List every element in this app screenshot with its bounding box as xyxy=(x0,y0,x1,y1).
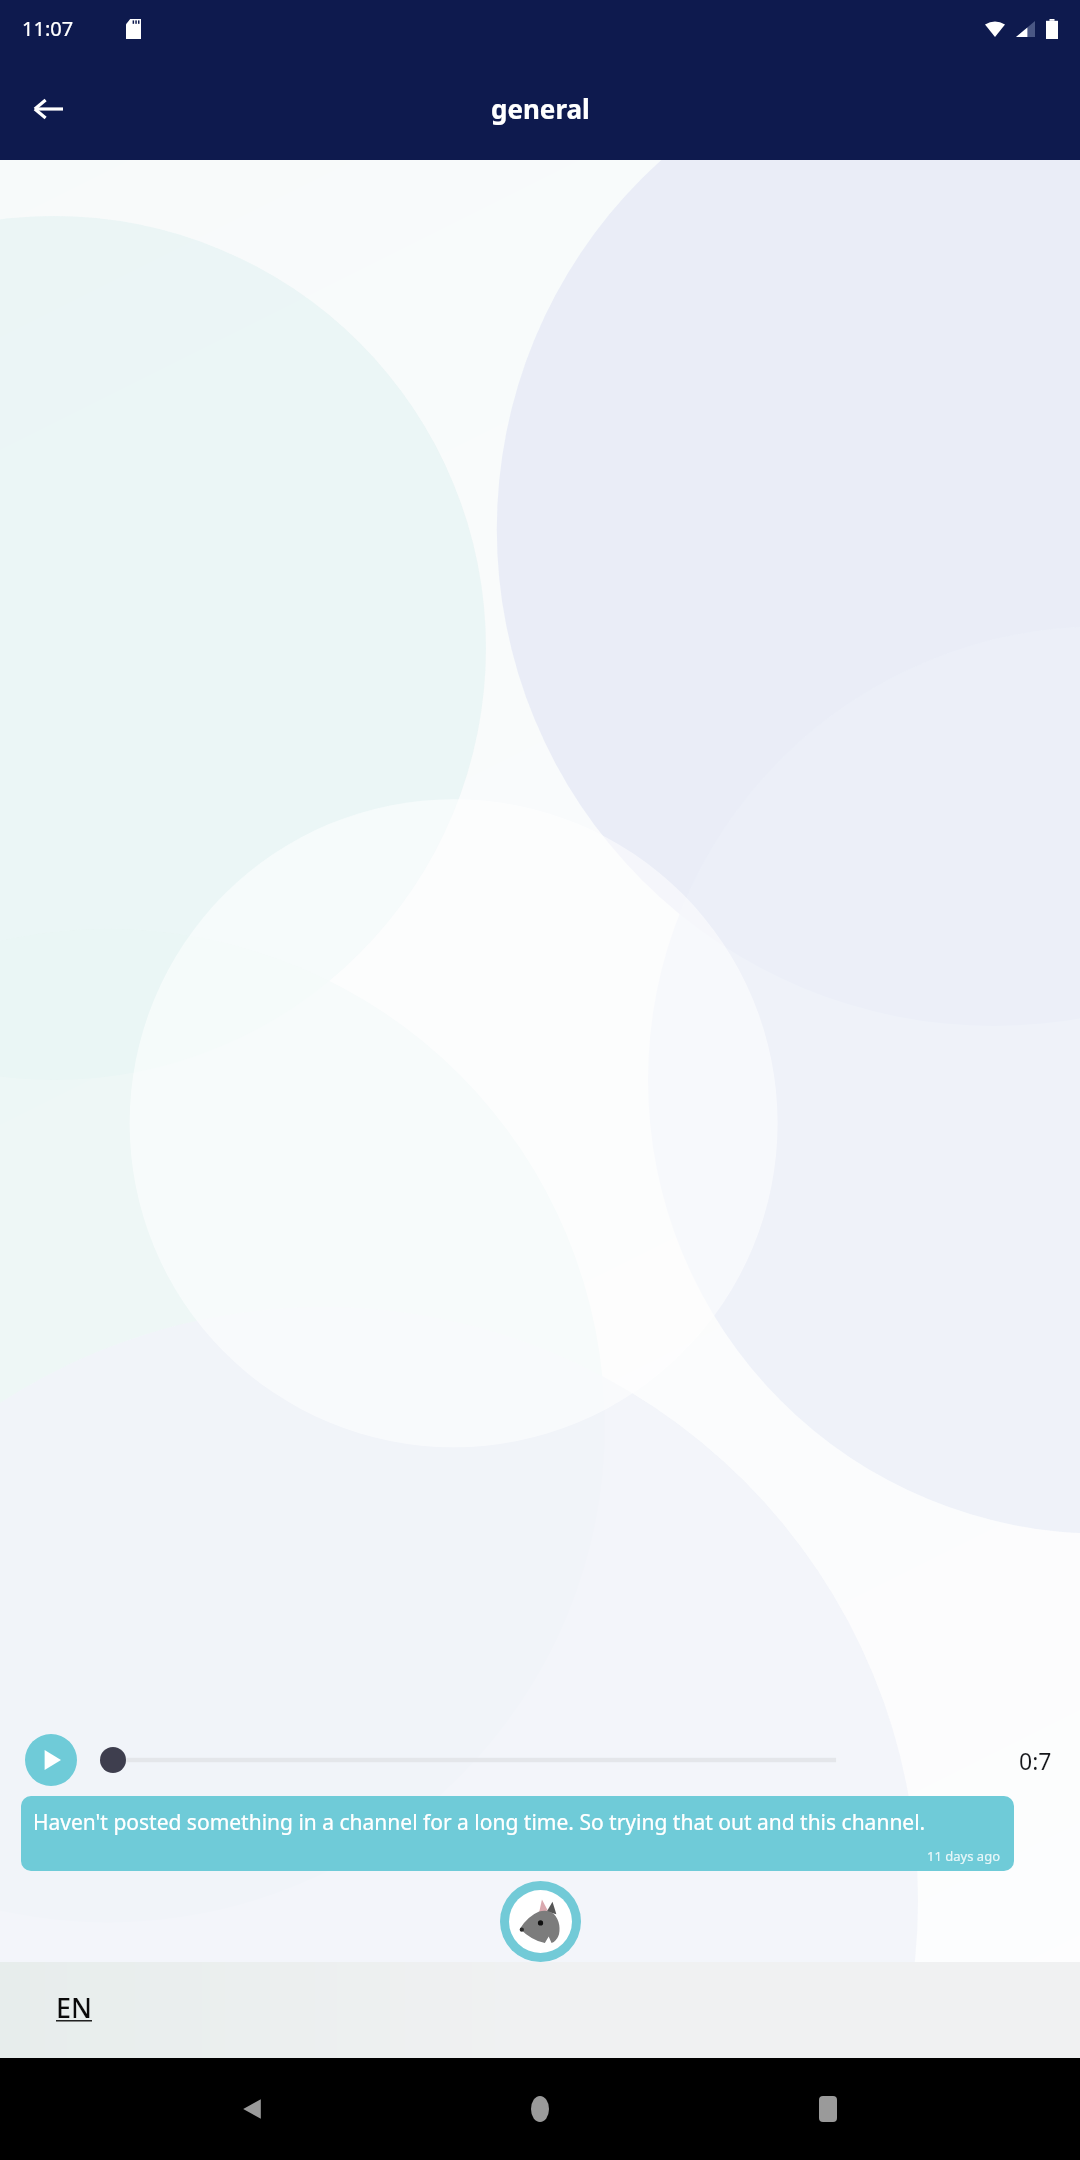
button[interactable] xyxy=(99,1743,1009,1777)
button[interactable]: Back xyxy=(216,2073,288,2145)
button[interactable]: Play xyxy=(25,1734,77,1786)
button[interactable]: Home xyxy=(504,2073,576,2145)
staticText: EN xyxy=(56,1989,92,2026)
button[interactable]: Recent apps xyxy=(792,2073,864,2145)
button[interactable]: Profile avatar xyxy=(500,1881,581,1962)
button[interactable]: Back xyxy=(20,81,76,137)
staticText: Haven't posted something in a channel fo… xyxy=(33,1808,926,1837)
staticText: 0:7 xyxy=(1019,1745,1052,1776)
button[interactable]: Haven't posted something in a channel fo… xyxy=(21,1796,1014,1871)
button[interactable]: EN xyxy=(56,1989,92,2026)
staticText: 11:07 xyxy=(22,15,74,42)
staticText: general xyxy=(491,91,590,126)
staticText: 11 days ago xyxy=(33,1847,1000,1865)
